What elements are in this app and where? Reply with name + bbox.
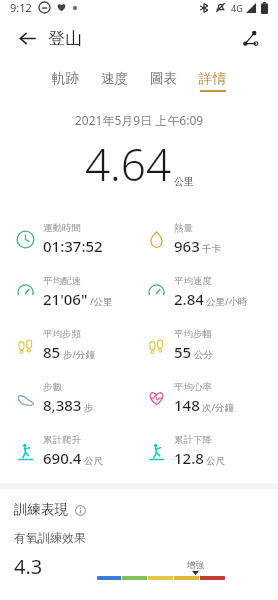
staticText: 2.84 bbox=[174, 289, 204, 309]
staticText: 步/分鐘 bbox=[63, 348, 96, 361]
staticText: 148 bbox=[174, 395, 200, 415]
staticText: 公尺 bbox=[206, 455, 225, 467]
button[interactable]: Share bbox=[234, 22, 266, 54]
staticText: /公里 bbox=[90, 295, 113, 308]
button[interactable]: Info bbox=[72, 502, 88, 518]
button[interactable]: 平均速度 bbox=[145, 265, 278, 318]
staticText: 平均心率 bbox=[174, 381, 212, 393]
button[interactable]: 平均配速 bbox=[14, 265, 139, 318]
staticText: 4G bbox=[231, 2, 243, 14]
button[interactable]: Back bbox=[12, 23, 42, 53]
staticText: 8,383 bbox=[43, 395, 82, 415]
staticText: 公尺 bbox=[84, 455, 103, 467]
button[interactable]: 軌跡 bbox=[52, 70, 79, 92]
staticText: 速度 bbox=[101, 70, 128, 87]
staticText: 55 bbox=[174, 342, 192, 362]
staticText: 步 bbox=[84, 402, 94, 414]
staticText: 累計下降 bbox=[174, 434, 212, 446]
button[interactable]: 熱量 bbox=[145, 212, 278, 265]
button[interactable]: 速度 bbox=[101, 70, 128, 92]
staticText: 有氧訓練效果 bbox=[14, 530, 86, 545]
staticText: 2021年5月9日 上午6:09 bbox=[75, 112, 204, 128]
staticText: 千卡 bbox=[202, 243, 221, 255]
staticText: 4.3 bbox=[14, 553, 43, 580]
staticText: 平均步頻 bbox=[43, 328, 81, 340]
staticText: 9:12 bbox=[10, 0, 32, 15]
staticText: 12.8 bbox=[174, 448, 204, 468]
button[interactable]: 平均心率 bbox=[145, 371, 278, 424]
staticText: 運動時間 bbox=[43, 222, 81, 234]
staticText: 軌跡 bbox=[52, 70, 79, 87]
staticText: 訓練表現 bbox=[14, 501, 68, 518]
staticText: 圖表 bbox=[150, 70, 177, 87]
staticText: 平均步幅 bbox=[174, 328, 212, 340]
staticText: 登山 bbox=[48, 28, 82, 49]
staticText: 增強 bbox=[187, 560, 204, 571]
staticText: 01:37:52 bbox=[43, 236, 103, 256]
staticText: 公分 bbox=[194, 349, 213, 361]
staticText: 85 bbox=[43, 342, 61, 362]
button[interactable]: 步數 bbox=[14, 371, 139, 424]
staticText: 次/分鐘 bbox=[202, 401, 235, 414]
button[interactable]: 累計下降 bbox=[145, 424, 278, 477]
staticText: 平均速度 bbox=[174, 275, 212, 287]
button[interactable]: 圖表 bbox=[150, 70, 177, 92]
button[interactable]: 累計爬升 bbox=[14, 424, 139, 477]
staticText: 詳情 bbox=[199, 70, 226, 87]
button[interactable]: 運動時間 bbox=[14, 212, 139, 265]
staticText: 熱量 bbox=[174, 222, 193, 234]
staticText: 690.4 bbox=[43, 448, 82, 468]
staticText: 公里/小時 bbox=[206, 295, 248, 308]
staticText: 累計爬升 bbox=[43, 434, 81, 446]
staticText: 平均配速 bbox=[43, 275, 81, 287]
button[interactable]: 平均步幅 bbox=[145, 318, 278, 371]
staticText: 21'06" bbox=[43, 289, 88, 309]
staticText: 963 bbox=[174, 236, 200, 256]
button[interactable]: 詳情 bbox=[199, 70, 226, 92]
staticText: 公里 bbox=[174, 175, 194, 188]
staticText: 步數 bbox=[43, 381, 62, 393]
button[interactable]: 平均步頻 bbox=[14, 318, 139, 371]
staticText: 4.64 bbox=[85, 134, 172, 194]
